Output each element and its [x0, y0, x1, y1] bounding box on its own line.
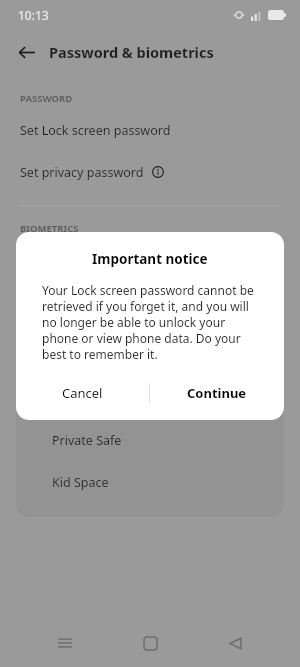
staticText: Important notice [92, 250, 208, 268]
button[interactable]: Kid Space [16, 461, 284, 503]
staticText: Password & biometrics [49, 42, 214, 62]
staticText: Kid Space [52, 474, 109, 491]
staticText: 10:13 [18, 7, 49, 23]
staticText: Cancel [62, 384, 103, 402]
staticText: Your Lock screen password cannot be retr… [42, 282, 258, 362]
button[interactable]: Set privacy password [0, 151, 300, 193]
button[interactable]: Back [12, 38, 40, 66]
button[interactable]: Home [130, 623, 170, 663]
staticText: Continue [187, 384, 247, 402]
staticText: PASSWORD [20, 92, 73, 105]
staticText: Private Safe [52, 432, 122, 449]
button[interactable]: Private Safe [16, 419, 284, 461]
button[interactable]: Continue [150, 374, 284, 412]
staticText: Set privacy password [20, 164, 144, 181]
button[interactable]: Cancel [16, 374, 149, 412]
button[interactable]: Back [215, 623, 255, 663]
staticText: Set Lock screen password [20, 122, 171, 139]
staticText: BIOMETRICS [20, 222, 79, 235]
button[interactable]: Set Lock screen password [0, 109, 300, 151]
button[interactable]: Recents [45, 623, 85, 663]
